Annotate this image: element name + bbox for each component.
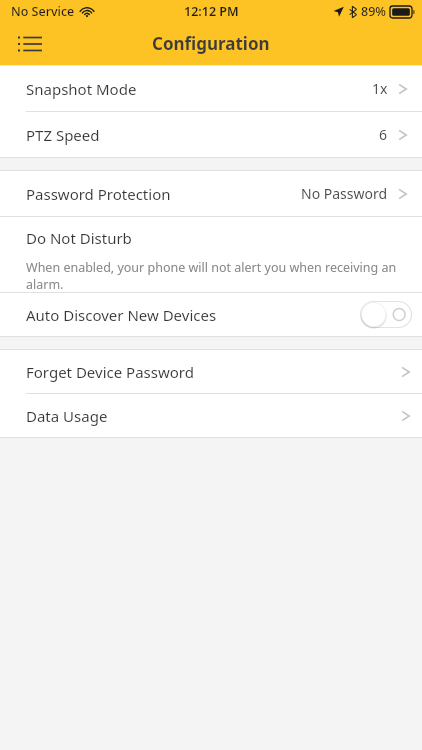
button[interactable]: Menu — [10, 24, 50, 64]
staticText: No Password — [301, 184, 388, 203]
staticText: Auto Discover New Devices — [26, 305, 217, 325]
staticText: Do Not Disturb — [26, 228, 132, 248]
staticText: Configuration — [152, 32, 270, 55]
staticText: 1x — [372, 79, 388, 98]
staticText: Password Protection — [26, 184, 171, 204]
button[interactable]: Forget Device Password — [0, 350, 422, 393]
button[interactable]: Data Usage — [0, 394, 422, 437]
staticText: 6 — [379, 125, 388, 144]
staticText: 12:12 PM — [184, 3, 239, 20]
button[interactable]: Snapshot Mode — [0, 66, 422, 111]
button[interactable]: Password Protection — [0, 171, 422, 216]
button[interactable]: PTZ Speed — [0, 112, 422, 157]
button[interactable]: Auto Discover New Devices toggle — [360, 301, 412, 328]
staticText: Data Usage — [26, 406, 108, 426]
staticText: Snapshot Mode — [26, 79, 137, 99]
staticText: When enabled, your phone will not alert … — [26, 259, 400, 292]
staticText: 89% — [361, 3, 386, 20]
staticText: PTZ Speed — [26, 125, 100, 145]
staticText: No Service — [11, 3, 75, 20]
button[interactable]: Do Not Disturb — [0, 217, 422, 292]
staticText: Forget Device Password — [26, 362, 194, 382]
